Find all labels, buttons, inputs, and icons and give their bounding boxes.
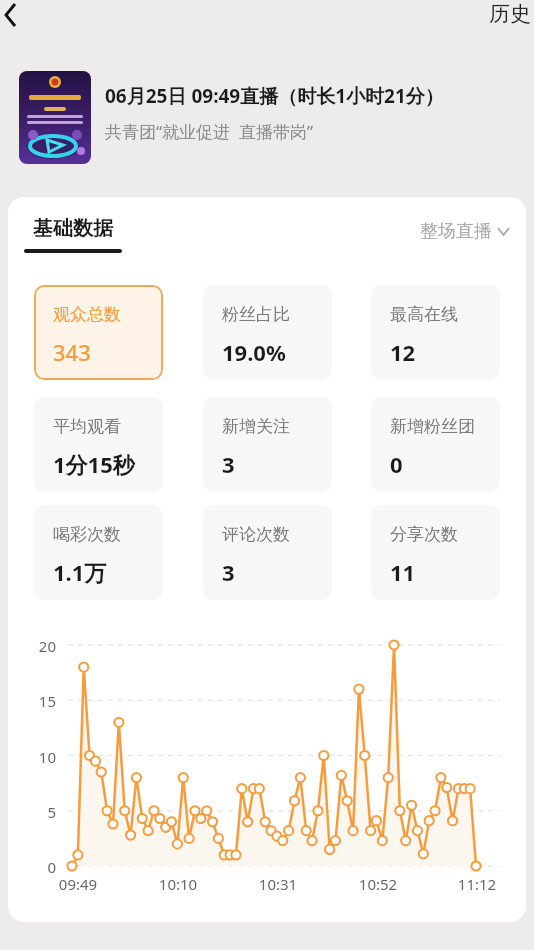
staticText: 5 [16, 802, 56, 822]
button[interactable]: 平均观看 [34, 397, 163, 492]
staticText: 10:10 [148, 874, 208, 894]
staticText: 343 [53, 337, 91, 367]
staticText: 分享次数 [390, 524, 458, 545]
staticText: 1.1万 [53, 557, 107, 587]
button[interactable] [0, 0, 36, 40]
staticText: 3 [222, 449, 235, 479]
staticText: 整场直播 [420, 220, 492, 243]
button[interactable]: 最高在线 [371, 285, 500, 380]
staticText: 观众总数 [53, 304, 121, 325]
button[interactable]: 新增关注 [203, 397, 332, 492]
staticText: 0 [16, 857, 56, 877]
staticText: 0 [390, 449, 403, 479]
staticText: 09:49 [48, 874, 108, 894]
staticText: 喝彩次数 [53, 524, 121, 545]
button[interactable]: 喝彩次数 [34, 505, 163, 600]
staticText: 10 [16, 747, 56, 767]
staticText: 19.0% [222, 337, 286, 367]
button[interactable]: 分享次数 [371, 505, 500, 600]
staticText: 15 [16, 691, 56, 711]
staticText: 11 [390, 557, 416, 587]
staticText: 06月25日 09:49直播（时长1小时21分） [105, 83, 444, 109]
staticText: 新增粉丝团 [390, 416, 475, 437]
staticText: 3 [222, 557, 235, 587]
button[interactable]: 观众总数 [34, 285, 163, 380]
button[interactable]: 整场直播 [420, 220, 509, 243]
staticText: 新增关注 [222, 416, 290, 437]
staticText: 1分15秒 [53, 449, 135, 479]
staticText: 最高在线 [390, 304, 458, 325]
staticText: 共青团“就业促进 直播带岗” [105, 120, 314, 143]
staticText: 粉丝占比 [222, 304, 290, 325]
button[interactable]: 评论次数 [203, 505, 332, 600]
button[interactable]: 基础数据 [33, 216, 131, 253]
staticText: 12 [390, 337, 416, 367]
button[interactable]: 历史 [489, 1, 531, 27]
button[interactable]: 粉丝占比 [203, 285, 332, 380]
staticText: 10:52 [348, 874, 408, 894]
button[interactable]: 新增粉丝团 [371, 397, 500, 492]
staticText: 20 [16, 636, 56, 656]
staticText: 平均观看 [53, 416, 121, 437]
staticText: 基础数据 [33, 216, 113, 241]
staticText: 11:12 [447, 874, 507, 894]
staticText: 10:31 [248, 874, 308, 894]
staticText: 评论次数 [222, 524, 290, 545]
